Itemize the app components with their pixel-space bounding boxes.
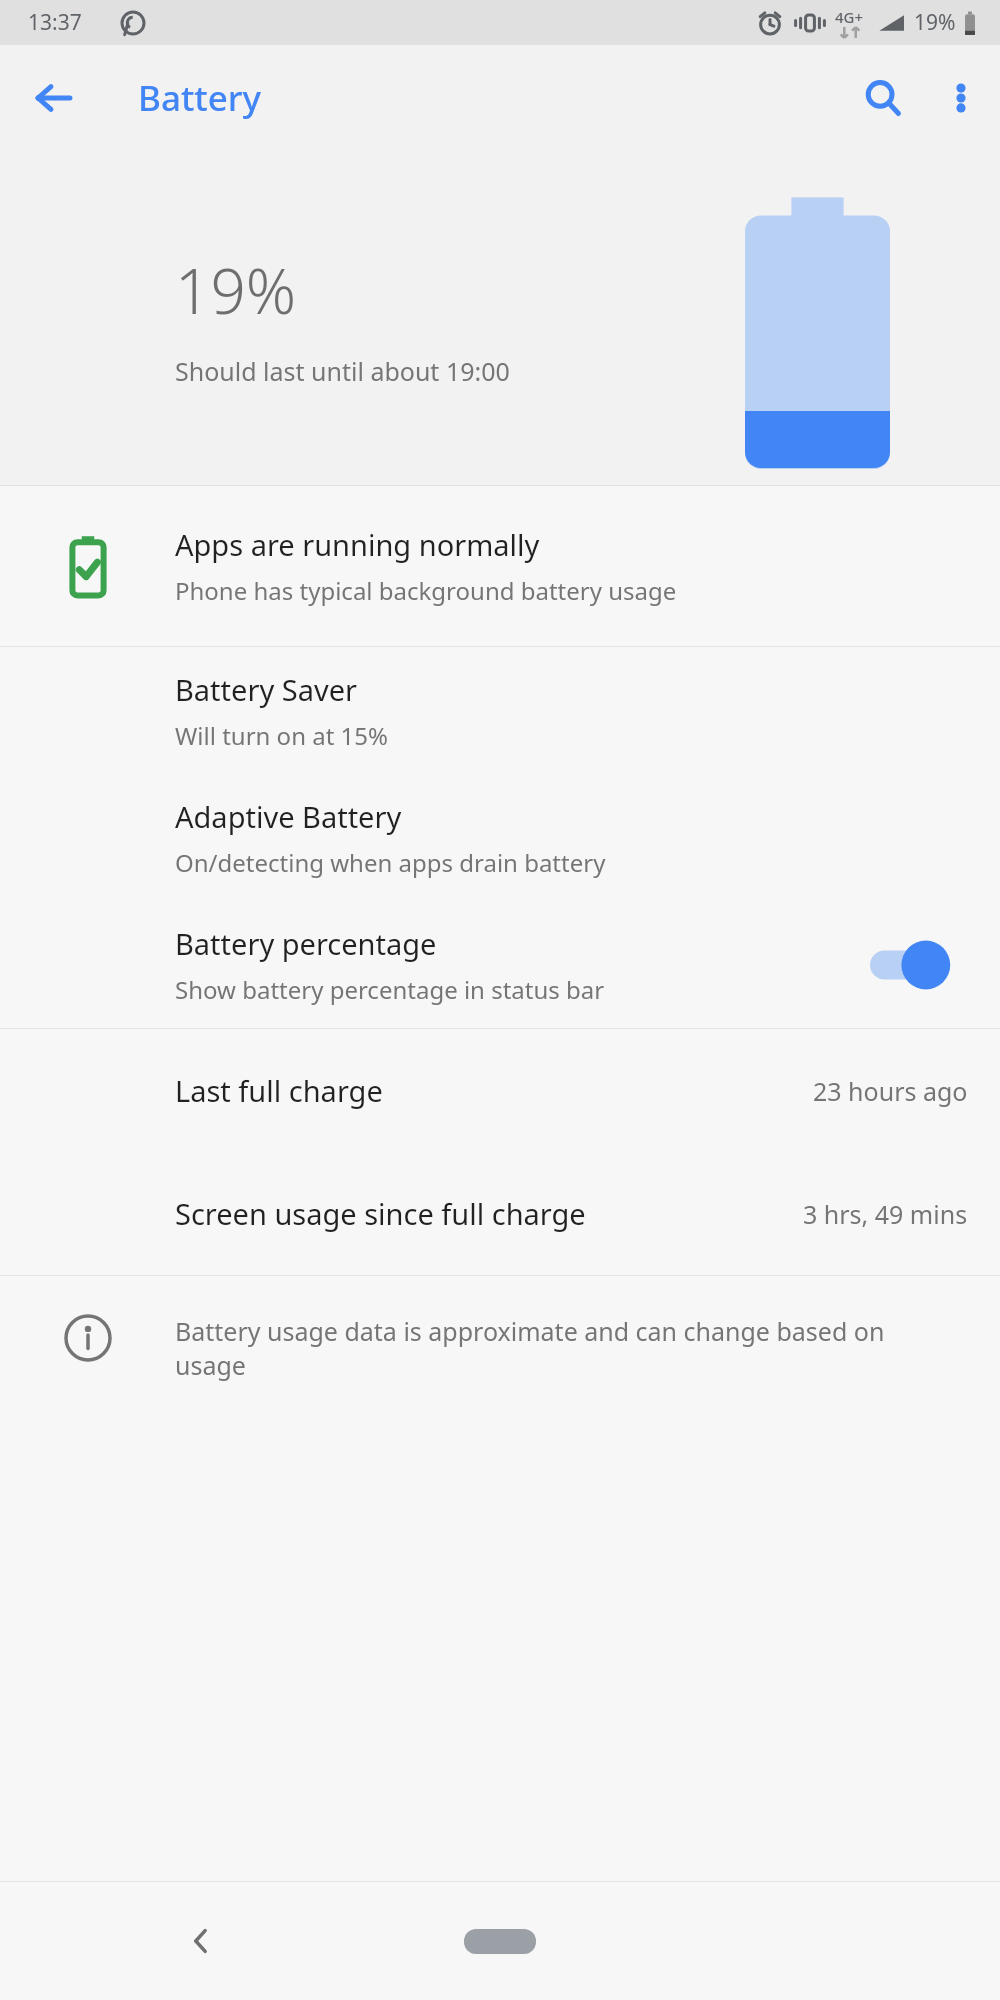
staticText: Battery [138, 74, 262, 122]
staticText: Screen usage since full charge [175, 1194, 803, 1233]
button[interactable]: More options [922, 59, 1000, 137]
staticText: On/detecting when apps drain battery [175, 846, 606, 879]
button[interactable]: Last full charge [0, 1029, 1000, 1152]
staticText: Will turn on at 15% [175, 719, 388, 752]
staticText: 19% [175, 248, 297, 332]
staticText: Should last until about 19:00 [175, 354, 510, 388]
staticText: 13:37 [28, 8, 82, 37]
button[interactable]: Search [844, 59, 922, 137]
staticText: Battery Saver [175, 670, 357, 709]
staticText: Apps are running normally [175, 525, 540, 564]
button[interactable]: Home [445, 1911, 555, 1971]
button[interactable]: Adaptive Battery [0, 774, 1000, 901]
button[interactable]: Battery Saver [0, 647, 1000, 774]
staticText: 19% [914, 8, 956, 37]
staticText: Show battery percentage in status bar [175, 973, 605, 1006]
staticText: Battery usage data is approximate and ca… [175, 1314, 960, 1382]
staticText: Battery percentage [175, 924, 437, 963]
button[interactable]: Apps are running normally [0, 486, 1000, 646]
button[interactable]: Screen usage since full charge [0, 1152, 1000, 1275]
staticText: Last full charge [175, 1071, 813, 1110]
staticText: Adaptive Battery [175, 797, 402, 836]
staticText: Phone has typical background battery usa… [175, 574, 677, 607]
button[interactable]: Back [170, 1910, 232, 1972]
staticText: 4G+ [835, 7, 864, 27]
button[interactable]: Back [18, 62, 90, 134]
staticText: 23 hours ago [813, 1074, 968, 1108]
button[interactable]: Battery percentage [0, 901, 1000, 1028]
staticText: 3 hrs, 49 mins [803, 1197, 968, 1231]
